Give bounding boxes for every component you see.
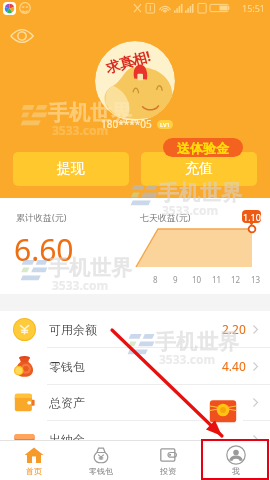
- staticText: 我: [232, 466, 240, 476]
- staticText: 180****05: [101, 117, 152, 131]
- staticText: 首页: [26, 466, 42, 476]
- staticText: 七天收益(元): [140, 211, 191, 223]
- staticText: 送体验金: [177, 140, 229, 156]
- staticText: 4.40: [222, 358, 246, 374]
- staticText: 零钱包: [89, 466, 113, 476]
- staticText: LV1: [160, 121, 171, 129]
- button[interactable]: 我: [202, 441, 270, 480]
- staticText: 3533.com: [52, 277, 109, 293]
- staticText: 出纳金: [49, 432, 85, 447]
- button[interactable]: 零钱包: [67, 441, 134, 480]
- staticText: 15:51: [242, 2, 266, 14]
- button[interactable]: Toggle balance visibility: [8, 22, 36, 50]
- staticText: 零钱包: [49, 359, 85, 374]
- button[interactable]: 总资产: [0, 385, 270, 421]
- staticText: 12: [231, 274, 241, 285]
- staticText: 手机世界: [48, 100, 132, 126]
- staticText: 11: [212, 274, 222, 285]
- staticText: 8: [153, 274, 158, 285]
- staticText: 10: [192, 274, 202, 285]
- staticText: 6.60: [14, 229, 74, 270]
- button[interactable]: 提现: [13, 152, 129, 186]
- button[interactable]: 零钱包: [0, 348, 270, 385]
- staticText: 总资产: [49, 395, 85, 410]
- staticText: 9: [173, 274, 178, 285]
- staticText: 手机世界: [158, 180, 242, 206]
- staticText: 投资: [160, 466, 176, 476]
- button[interactable]: 可用余额: [0, 311, 270, 348]
- button[interactable]: 充值: [141, 152, 257, 186]
- staticText: 手机世界: [48, 255, 132, 281]
- staticText: 13: [251, 274, 261, 285]
- staticText: 1.10: [243, 211, 261, 223]
- button[interactable]: 投资: [134, 441, 202, 480]
- staticText: 3533.com: [159, 351, 216, 367]
- staticText: 可用余额: [49, 322, 97, 337]
- staticText: 2.20: [222, 321, 246, 337]
- button[interactable]: 首页: [0, 441, 67, 480]
- staticText: 累计收益(元): [16, 211, 67, 223]
- staticText: 充值: [185, 160, 213, 178]
- staticText: 提现: [57, 160, 85, 178]
- button[interactable]: 出纳金: [0, 421, 270, 457]
- staticText: 3533.com: [162, 202, 219, 218]
- staticText: 求真相!: [103, 46, 153, 77]
- staticText: 3533.com: [52, 122, 109, 138]
- staticText: 手机世界: [155, 329, 239, 355]
